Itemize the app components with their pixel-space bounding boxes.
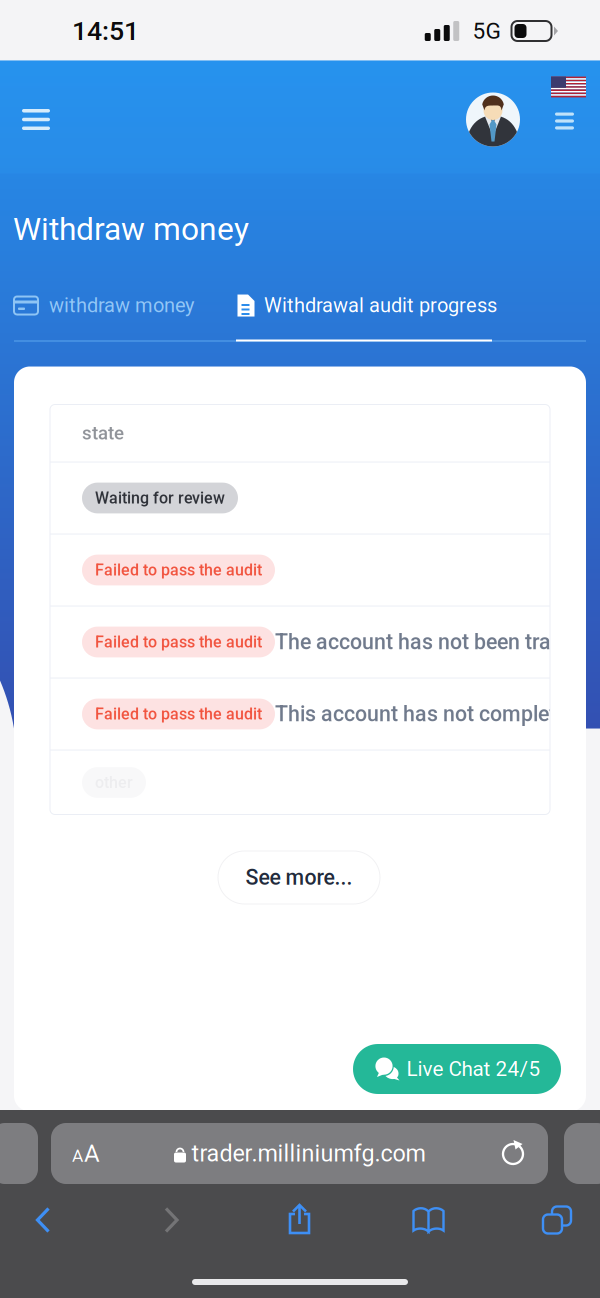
staticText: A bbox=[72, 1146, 83, 1166]
button[interactable]: See more... bbox=[218, 851, 380, 904]
button[interactable]: withdraw money bbox=[14, 279, 194, 331]
button[interactable]: Page settings bbox=[51, 1123, 121, 1184]
staticText: The account has not been traded bbox=[275, 629, 586, 654]
staticText: This account has not completed bbox=[275, 701, 579, 726]
button[interactable]: Tabs bbox=[517, 1192, 597, 1248]
staticText: See more... bbox=[245, 865, 352, 890]
button[interactable]: Menu bbox=[3, 88, 69, 150]
staticText: Withdrawal audit progress bbox=[264, 294, 497, 317]
button[interactable]: Back bbox=[3, 1192, 83, 1248]
button[interactable]: Account bbox=[466, 92, 520, 146]
staticText: A bbox=[84, 1139, 100, 1167]
staticText: 14:51 bbox=[72, 15, 139, 47]
staticText: Failed to pass the audit bbox=[95, 633, 262, 651]
staticText: state bbox=[82, 422, 124, 444]
button[interactable]: Forward bbox=[131, 1192, 211, 1248]
button[interactable]: Language bbox=[546, 104, 583, 137]
button[interactable]: Share bbox=[260, 1192, 340, 1248]
button[interactable]: Bookmarks bbox=[388, 1192, 468, 1248]
button[interactable]: Reload bbox=[478, 1123, 548, 1184]
staticText: 5G bbox=[472, 18, 500, 44]
staticText: other bbox=[95, 773, 133, 792]
button[interactable]: Live Chat 24/5 bbox=[353, 1044, 561, 1094]
staticText: Failed to pass the audit bbox=[95, 561, 262, 579]
staticText: Failed to pass the audit bbox=[95, 705, 262, 723]
staticText: Live Chat 24/5 bbox=[406, 1057, 540, 1081]
staticText: trader.milliniumfg.com bbox=[191, 1140, 425, 1167]
staticText: Withdraw money bbox=[13, 210, 249, 248]
staticText: withdraw money bbox=[49, 294, 194, 317]
staticText: Waiting for review bbox=[95, 489, 225, 507]
button[interactable]: Withdrawal audit progress bbox=[237, 279, 497, 331]
